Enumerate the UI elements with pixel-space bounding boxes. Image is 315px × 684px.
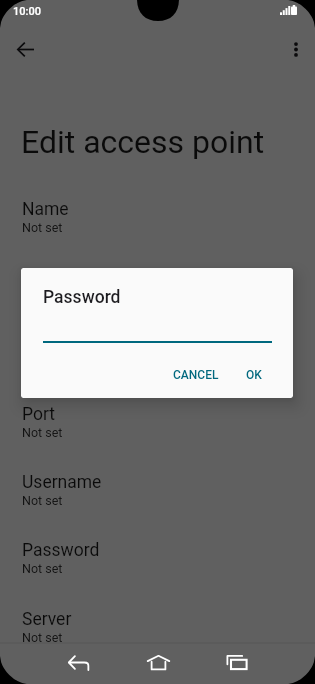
staticText: Server <box>22 609 72 630</box>
button[interactable]: OK <box>236 358 272 392</box>
staticText: Name <box>22 199 69 220</box>
button[interactable]: Back <box>57 641 100 684</box>
button[interactable]: Navigate up <box>3 27 48 72</box>
staticText: Password <box>22 540 100 561</box>
staticText: 10:00 <box>13 5 41 18</box>
staticText: Not set <box>22 630 63 645</box>
staticText: Port <box>22 404 55 425</box>
button[interactable]: Proxy <box>0 335 315 371</box>
staticText: Username <box>22 472 102 493</box>
staticText: Not set <box>22 220 63 235</box>
staticText: Proxy <box>22 335 66 356</box>
staticText: Password <box>43 287 121 308</box>
button[interactable]: More options <box>273 27 315 72</box>
button[interactable]: APN <box>0 267 315 303</box>
staticText: Not set <box>22 288 63 303</box>
staticText: Not set <box>22 425 63 440</box>
button[interactable]: Recent apps <box>215 641 258 684</box>
button[interactable]: Name <box>0 199 315 235</box>
staticText: OK <box>246 368 262 382</box>
button[interactable]: CANCEL <box>163 358 229 392</box>
staticText: Edit access point <box>21 123 265 161</box>
staticText: CANCEL <box>173 368 219 382</box>
button[interactable]: Password <box>0 540 315 576</box>
button[interactable]: Port <box>0 404 315 440</box>
button[interactable]: Home <box>137 641 180 684</box>
staticText: Not set <box>22 493 63 508</box>
staticText: Not set <box>22 561 63 576</box>
staticText: APN <box>22 267 57 288</box>
button[interactable]: Username <box>0 472 315 508</box>
button[interactable]: Server <box>0 609 315 645</box>
